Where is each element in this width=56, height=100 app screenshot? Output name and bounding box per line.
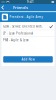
staticText: Add New xyxy=(21,58,34,61)
staticText: LP - Lean Professional xyxy=(3,32,33,35)
staticText: PMI - Agile & Lean xyxy=(3,38,29,42)
staticText: Friends xyxy=(13,5,28,10)
button[interactable]: Back xyxy=(0,4,6,11)
button[interactable]: LP - Lean Professional xyxy=(1,30,54,37)
staticText: GDA - Service Oriented Arch. xyxy=(3,25,43,28)
button[interactable]: PMI - Agile & Lean xyxy=(1,37,54,43)
staticText: Prendersi - Agile Army xyxy=(9,15,42,19)
button[interactable]: GDA - Service Oriented Arch. xyxy=(1,23,54,30)
staticText: 9:41 xyxy=(27,0,34,4)
button[interactable]: Add New xyxy=(3,56,53,63)
